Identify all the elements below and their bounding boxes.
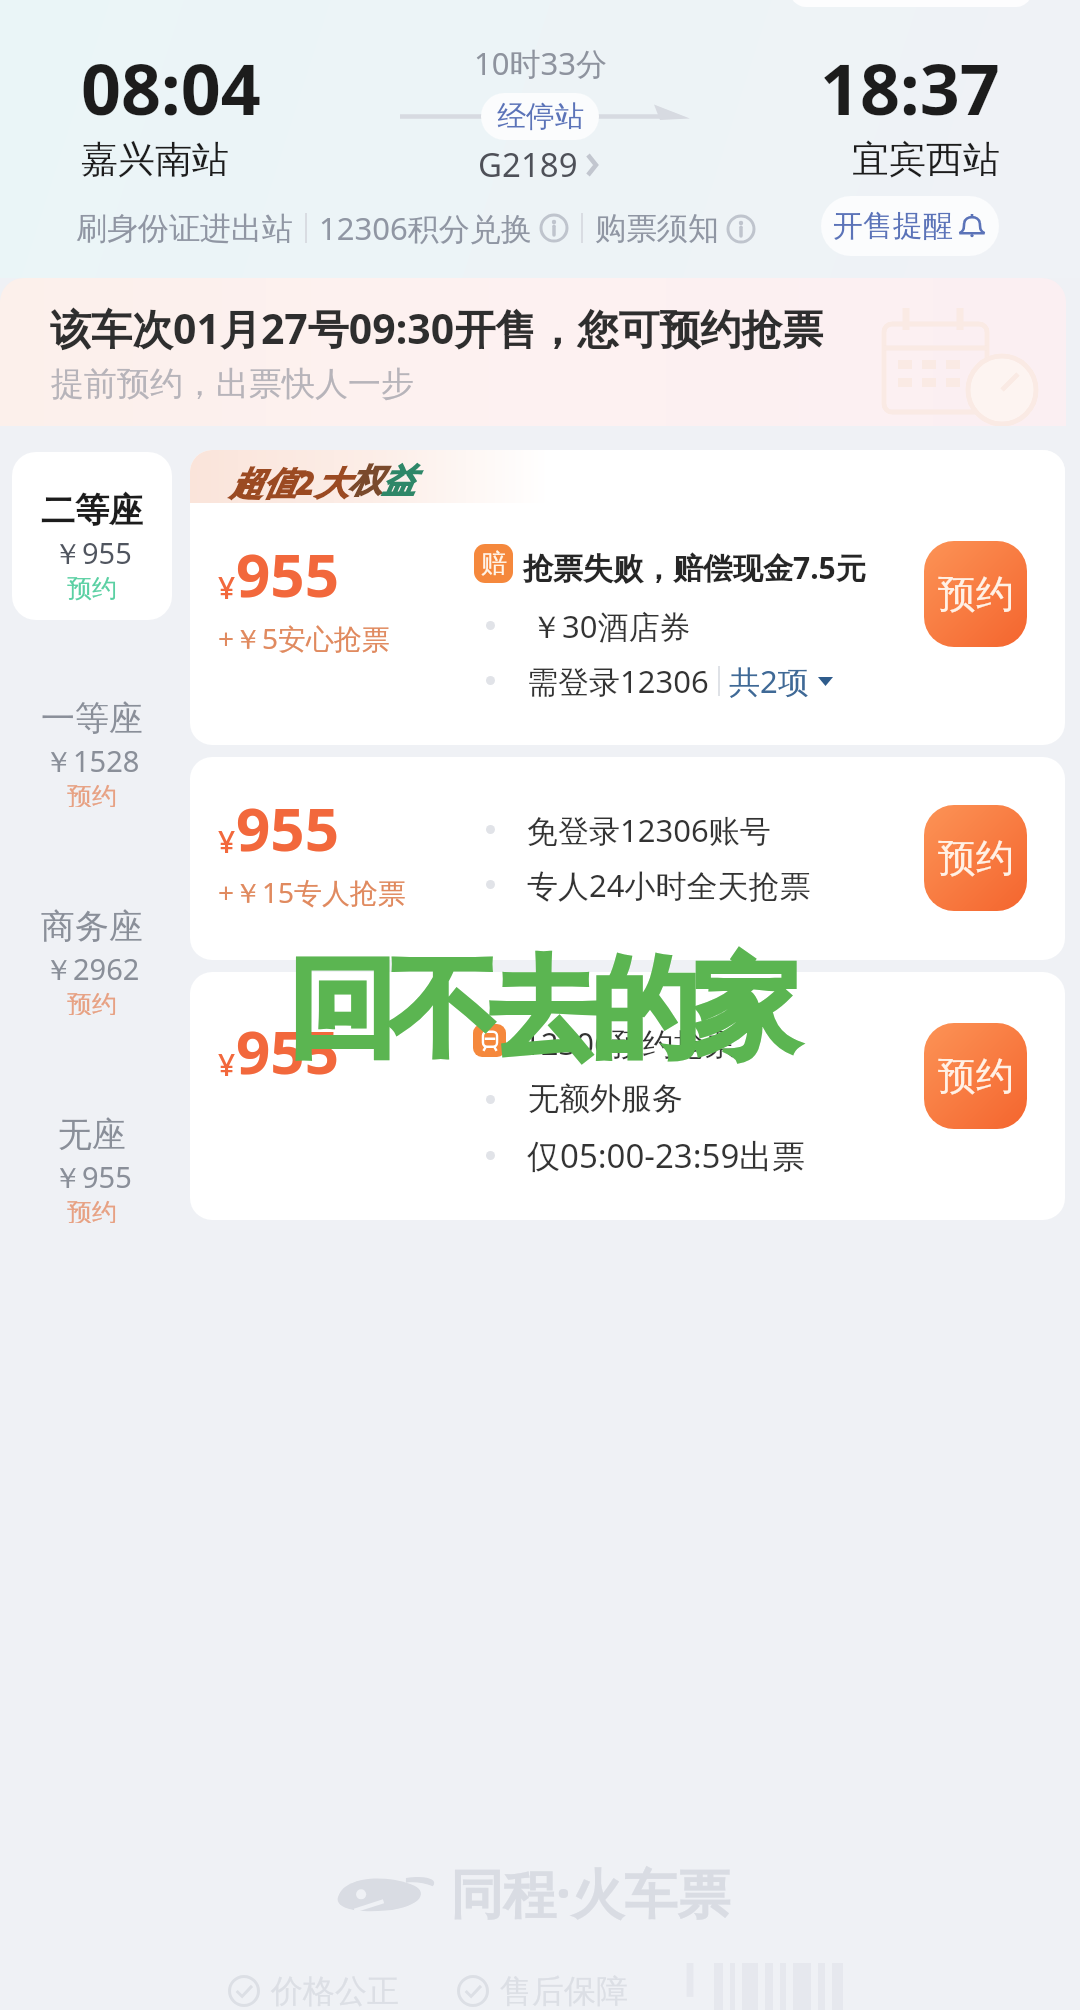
button[interactable]: 车次详情 G2189 (478, 142, 602, 187)
staticText: 预约 (938, 570, 1014, 618)
button[interactable]: 预约 (924, 1023, 1027, 1129)
staticText: 无座 (58, 1113, 126, 1156)
staticText: ￥2962 (44, 949, 140, 989)
staticText: ￥1528 (44, 741, 140, 781)
staticText: 预约 (67, 781, 117, 807)
button[interactable]: 一等座 (12, 697, 172, 807)
button[interactable]: 开售提醒 (821, 196, 999, 256)
staticText: 商务座 (41, 905, 143, 948)
staticText: 赔 (481, 547, 507, 580)
button[interactable]: 12306积分兑换说明 (319, 207, 569, 249)
button[interactable]: 该车次01月27号09:30开售，您可预约抢票 (0, 278, 1066, 426)
button[interactable]: 经停站 (481, 93, 599, 140)
staticText: 预约 (67, 573, 117, 604)
button[interactable]: 购票须知说明 (595, 209, 756, 248)
staticText: 08:04 (81, 40, 261, 135)
staticText: 12306积分兑换 (319, 207, 532, 249)
staticText: 共2项 (729, 660, 809, 702)
staticText: 价格公正 (271, 1971, 399, 2010)
staticText: ￥955 (53, 533, 132, 573)
staticText: 回不去的家 (291, 942, 796, 1078)
staticText: ￥955 (53, 1157, 132, 1197)
staticText: 宜宾西站 (852, 136, 1000, 183)
staticText: 免登录12306账号 (527, 809, 771, 851)
staticText: ¥ (218, 821, 236, 862)
staticText: ￥30酒店券 (531, 605, 691, 647)
button[interactable] (190, 972, 1065, 1220)
button[interactable]: 预约 (924, 541, 1027, 647)
button[interactable]: 预约 (924, 805, 1027, 911)
staticText: 嘉兴南站 (81, 136, 229, 183)
staticText: 抢票失败，赔偿现金7.5元 (523, 547, 866, 588)
staticText: ¥ (218, 567, 236, 608)
staticText: 益 (382, 460, 415, 502)
staticText: 二等座 (41, 489, 143, 532)
staticText: 刷身份证进出站 (76, 209, 293, 248)
staticText: +￥5安心抢票 (218, 619, 391, 657)
staticText: 该车次01月27号09:30开售，您可预约抢票 (50, 300, 824, 356)
staticText: 权 (349, 460, 382, 502)
staticText: 预约 (938, 1052, 1014, 1100)
button[interactable]: 无座 (12, 1113, 172, 1223)
staticText: 开售提醒 (833, 207, 953, 245)
staticText: +￥15专人抢票 (218, 873, 407, 911)
staticText: 无额外服务 (528, 1079, 683, 1118)
staticText: 购票须知 (595, 209, 719, 248)
button[interactable] (190, 757, 1065, 960)
staticText: 18:37 (820, 40, 1000, 135)
staticText: 专人24小时全天抢票 (527, 864, 811, 906)
staticText: G2189 (478, 142, 578, 187)
button[interactable]: 超值2大 (190, 450, 1065, 745)
button[interactable]: 商务座 (12, 905, 172, 1015)
staticText: 提前预约，出票快人一步 (51, 363, 414, 405)
staticText: 超值2大 (230, 460, 349, 505)
staticText: 一等座 (41, 697, 143, 740)
staticText: 经停站 (497, 98, 584, 135)
staticText: 售后保障 (500, 1971, 628, 2010)
staticText: 12306预约抢票 (523, 1022, 736, 1064)
staticText: 预约 (938, 834, 1014, 882)
staticText: 预约 (67, 1197, 117, 1223)
button[interactable]: 二等座 (12, 452, 172, 620)
staticText: 预约 (67, 989, 117, 1015)
staticText: 同程·火车票 (450, 1856, 730, 1928)
staticText: 955 (236, 533, 339, 615)
staticText: 955 (236, 787, 339, 869)
button[interactable]: 刷身份证进出站 (76, 209, 293, 248)
staticText: 仅05:00-23:59出票 (527, 1133, 806, 1178)
staticText: 10时33分 (474, 42, 607, 84)
staticText: ¥ (218, 1044, 236, 1085)
button[interactable]: 展开共2项权益 (729, 660, 833, 702)
staticText: 955 (236, 1010, 339, 1092)
staticText: 需登录12306 (527, 660, 709, 702)
